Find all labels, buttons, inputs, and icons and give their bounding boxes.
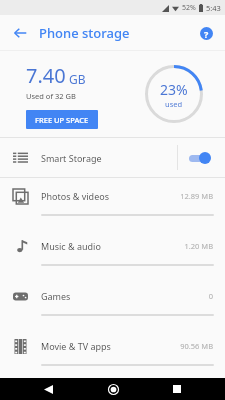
staticText: 12.89 MB xyxy=(180,191,213,201)
staticText: 1.20 MB xyxy=(184,241,213,251)
staticText: 23% xyxy=(160,80,188,99)
button[interactable]: Games xyxy=(0,278,225,328)
staticText: Movie & TV apps xyxy=(41,340,111,352)
staticText: Smart Storage xyxy=(41,152,102,164)
staticText: 7.40 xyxy=(26,62,66,89)
staticText: Used of 32 GB xyxy=(26,91,76,101)
staticText: used xyxy=(165,99,183,109)
staticText: Phone storage xyxy=(39,24,130,42)
staticText: GB xyxy=(69,71,86,87)
button[interactable]: FREE UP SPACE xyxy=(26,110,98,129)
staticText: Music & audio xyxy=(41,240,101,252)
button[interactable]: Music & audio xyxy=(0,228,225,278)
staticText: ? xyxy=(204,28,209,40)
button[interactable]: Movie & TV apps xyxy=(0,328,225,378)
button[interactable]: Help xyxy=(194,21,218,45)
button[interactable]: Back xyxy=(31,378,65,400)
button[interactable]: Back xyxy=(6,19,34,47)
button[interactable]: Recents xyxy=(160,378,194,400)
button[interactable]: Smart Storage toggle xyxy=(183,143,215,173)
button[interactable]: Smart Storage xyxy=(0,138,225,177)
staticText: 52% xyxy=(182,3,196,13)
button[interactable]: Home xyxy=(96,378,130,400)
staticText: 90.56 MB xyxy=(180,341,213,351)
staticText: 5:43 xyxy=(206,3,221,13)
staticText: 0 xyxy=(208,291,213,301)
staticText: Photos & videos xyxy=(41,190,109,202)
staticText: Games xyxy=(41,290,71,302)
staticText: FREE UP SPACE xyxy=(35,115,89,125)
button[interactable]: Photos & videos xyxy=(0,178,225,228)
